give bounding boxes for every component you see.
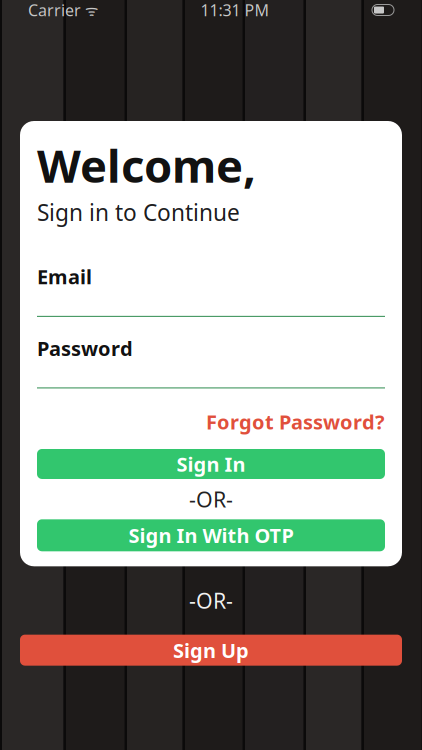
staticText: Sign In With OTP [128, 522, 293, 549]
staticText: Welcome, [37, 135, 256, 195]
staticText: Email [37, 263, 92, 290]
staticText: Sign in to Continue [37, 197, 240, 227]
staticText: 11:31 PM [200, 0, 269, 21]
staticText: Carrier [28, 0, 81, 21]
button[interactable]: Forgot Password? [206, 408, 385, 435]
staticText: -OR- [189, 485, 233, 513]
button[interactable]: Sign Up [20, 635, 402, 666]
button[interactable]: Sign In With OTP [37, 519, 385, 551]
staticText: Forgot Password? [206, 408, 385, 435]
staticText: ᯤ [81, 0, 98, 20]
staticText: -OR- [189, 586, 233, 615]
staticText: Password [37, 335, 133, 361]
button[interactable]: Sign In [37, 449, 385, 479]
staticText: Sign In [176, 451, 245, 477]
staticText: Sign Up [173, 637, 249, 663]
